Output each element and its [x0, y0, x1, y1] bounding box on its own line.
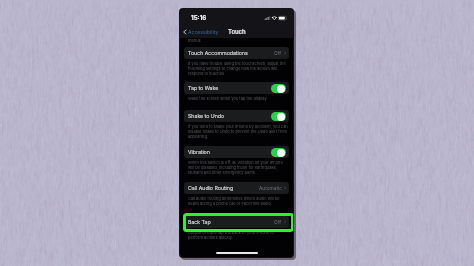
staticText: Off [274, 219, 282, 225]
button[interactable]: Accessibility [180, 28, 222, 36]
button[interactable]: Back Tap [184, 216, 289, 228]
staticText: When this switch is off, all vibration o… [188, 160, 288, 175]
other: Status icons [264, 15, 292, 21]
staticText: Shake to Undo [188, 113, 225, 119]
staticText: Call audio routing determines where audi… [188, 196, 288, 206]
staticText: menus [188, 38, 201, 43]
staticText: Accessibility [188, 29, 219, 35]
button[interactable]: Shake to Undo toggle [271, 112, 286, 121]
staticText: Touch [228, 28, 246, 35]
button[interactable]: Vibration toggle [271, 148, 286, 157]
button[interactable]: Tap to Wake toggle [271, 84, 286, 93]
staticText: Wake the screen when you tap the display… [188, 96, 288, 101]
staticText: Touch Accommodations [188, 50, 248, 56]
button[interactable]: Call Audio Routing [184, 182, 289, 194]
button[interactable]: Vibration [184, 146, 289, 158]
staticText: Automatic [259, 185, 282, 191]
button[interactable]: Shake to Undo [184, 110, 289, 122]
staticText: Back Tap [188, 219, 211, 225]
button[interactable]: Touch Accommodations [184, 47, 289, 59]
button[interactable]: Tap to Wake [184, 82, 289, 94]
staticText: If you have trouble using the touchscree… [188, 61, 288, 76]
staticText: Double or triple tap the back of your iP… [188, 230, 288, 240]
staticText: 15:16 [191, 14, 207, 22]
staticText: Tap to Wake [188, 85, 219, 91]
staticText: Off [274, 50, 282, 56]
staticText: Call Audio Routing [188, 185, 234, 191]
staticText: If you tend to shake your iPhone by acci… [188, 124, 288, 139]
staticText: Vibration [188, 149, 210, 155]
